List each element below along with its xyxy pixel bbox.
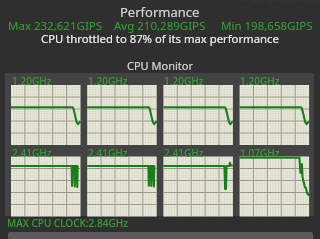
- staticText: 2.41GHz: [164, 146, 204, 160]
- staticText: 1.20GHz: [88, 74, 128, 88]
- staticText: Min 198,658GIPS: [221, 18, 313, 34]
- staticText: 2.41GHz: [12, 146, 52, 160]
- staticText: CPU throttled to 87% of its max performa…: [41, 31, 279, 46]
- staticText: 1.20GHz: [12, 74, 52, 88]
- staticText: Max 232,621GIPS: [8, 18, 103, 34]
- staticText: 1.20GHz: [240, 74, 280, 88]
- staticText: 1.07GHz: [240, 146, 280, 160]
- staticText: 2.41GHz: [88, 146, 128, 160]
- staticText: 1.20GHz: [164, 74, 204, 88]
- staticText: Avg 210,289GIPS: [114, 18, 206, 34]
- staticText: MAX CPU CLOCK:2.84GHz: [7, 216, 128, 230]
- staticText: Performance: [120, 3, 200, 21]
- staticText: CPU Monitor: [127, 58, 193, 73]
